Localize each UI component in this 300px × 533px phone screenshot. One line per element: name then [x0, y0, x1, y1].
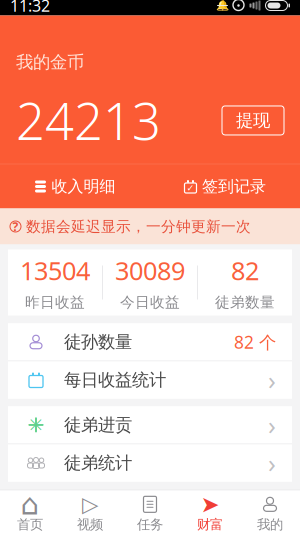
staticText: 我的 — [257, 516, 283, 533]
staticText: ➤ — [200, 491, 219, 517]
button[interactable]: 徒弟统计 — [8, 444, 292, 481]
button[interactable]: 每日收益统计 — [8, 361, 292, 398]
staticText: 收入明细 — [51, 177, 115, 196]
staticText: › — [268, 363, 276, 397]
staticText: 徒弟统计 — [64, 452, 132, 474]
staticText: ⌂ — [20, 488, 39, 521]
staticText: ✓ — [186, 183, 194, 193]
button[interactable]: ⌂ — [0, 490, 60, 533]
staticText: 24213 — [16, 87, 161, 154]
staticText: 任务 — [137, 516, 163, 533]
staticText: 每日收益统计 — [64, 369, 166, 391]
button[interactable]: 我的 — [240, 490, 300, 533]
staticText: 提现 — [236, 110, 270, 131]
staticText: ▷ — [82, 492, 98, 516]
staticText: 昨日收益 — [25, 293, 85, 311]
button[interactable]: 收入明细 — [0, 164, 150, 208]
staticText: 首页 — [17, 516, 43, 533]
button[interactable]: ✓ — [150, 164, 300, 208]
button[interactable]: ➤ — [180, 490, 240, 533]
staticText: 徒弟数量 — [215, 293, 275, 311]
staticText: 徒孙数量 — [64, 331, 132, 353]
button[interactable]: 提现 — [222, 106, 284, 135]
staticText: 🔔 — [216, 0, 229, 12]
button[interactable]: ✳ — [8, 406, 292, 443]
staticText: 财富 — [197, 516, 223, 533]
button[interactable]: 徒孙数量 — [8, 323, 292, 360]
staticText: 今日收益 — [120, 293, 180, 311]
staticText: 82 个 — [234, 330, 276, 353]
staticText: 数据会延迟显示，一分钟更新一次 — [26, 217, 251, 235]
staticText: 11:32 — [10, 0, 50, 16]
staticText: ? — [12, 218, 18, 234]
staticText: 签到记录 — [202, 177, 266, 196]
staticText: 我的金币 — [16, 51, 84, 73]
staticText: 视频 — [77, 516, 103, 533]
staticText: 徒弟进贡 — [64, 414, 132, 436]
staticText: 13504 — [20, 254, 90, 287]
staticText: ✳ — [27, 414, 44, 436]
staticText: 30089 — [115, 254, 185, 287]
button[interactable]: 任务 — [120, 490, 180, 533]
staticText: › — [268, 408, 276, 442]
button[interactable]: ▷ — [60, 490, 120, 533]
staticText: › — [268, 446, 276, 480]
staticText: 82 — [231, 254, 259, 287]
